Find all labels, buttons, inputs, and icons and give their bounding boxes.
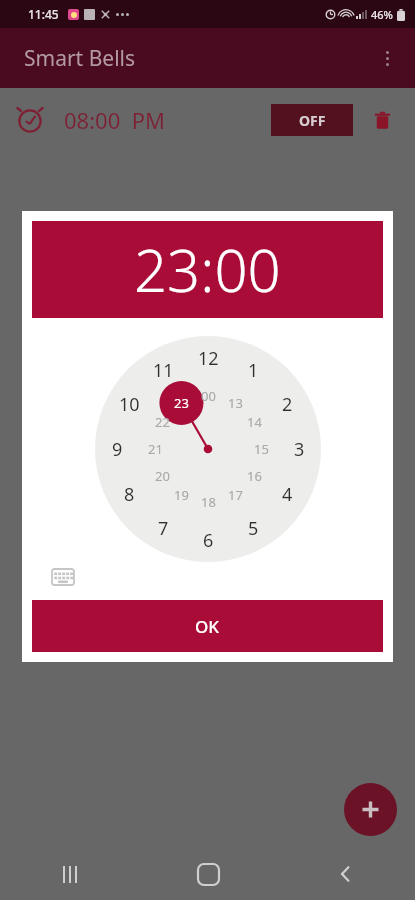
- button[interactable]: 23:00: [32, 221, 383, 318]
- staticText: 22: [155, 413, 170, 431]
- button[interactable]: 08:00 PM: [0, 88, 415, 151]
- staticText: 16: [247, 467, 262, 485]
- staticText: 6: [203, 528, 214, 553]
- staticText: OK: [195, 615, 220, 638]
- staticText: 18: [201, 493, 216, 511]
- staticText: 3: [294, 437, 305, 462]
- staticText: 08:00 PM: [64, 105, 165, 135]
- staticText: 1: [248, 358, 259, 383]
- staticText: 46%: [371, 7, 393, 22]
- staticText: 5: [248, 516, 259, 541]
- staticText: 19: [174, 486, 189, 504]
- staticText: 2: [282, 392, 293, 417]
- button[interactable]: Switch to text input: [48, 562, 78, 592]
- staticText: 17: [228, 486, 243, 504]
- staticText: 20: [155, 467, 170, 485]
- staticText: 23: [174, 394, 189, 412]
- staticText: 11:45: [28, 6, 59, 22]
- staticText: 4: [282, 482, 293, 507]
- staticText: 15: [254, 440, 269, 458]
- staticText: 14: [247, 413, 262, 431]
- button[interactable]: Delete alarm: [367, 105, 397, 135]
- button[interactable]: Add alarm: [344, 783, 397, 836]
- button[interactable]: Recent apps: [0, 848, 139, 900]
- staticText: 10: [119, 392, 140, 417]
- button[interactable]: More options: [367, 38, 407, 78]
- staticText: Smart Bells: [24, 44, 136, 73]
- staticText: 21: [148, 440, 163, 458]
- staticText: OFF: [299, 111, 326, 130]
- staticText: 13: [228, 394, 243, 412]
- staticText: 00: [201, 387, 216, 405]
- staticText: 23:00: [134, 230, 281, 309]
- staticText: 7: [158, 516, 169, 541]
- button[interactable]: OFF: [271, 104, 353, 136]
- button[interactable]: Home: [139, 848, 277, 900]
- staticText: 8: [124, 482, 135, 507]
- button[interactable]: Back: [277, 848, 415, 900]
- staticText: 9: [112, 437, 123, 462]
- staticText: 11: [153, 358, 174, 383]
- staticText: 12: [198, 346, 219, 371]
- button[interactable]: OK: [32, 600, 383, 652]
